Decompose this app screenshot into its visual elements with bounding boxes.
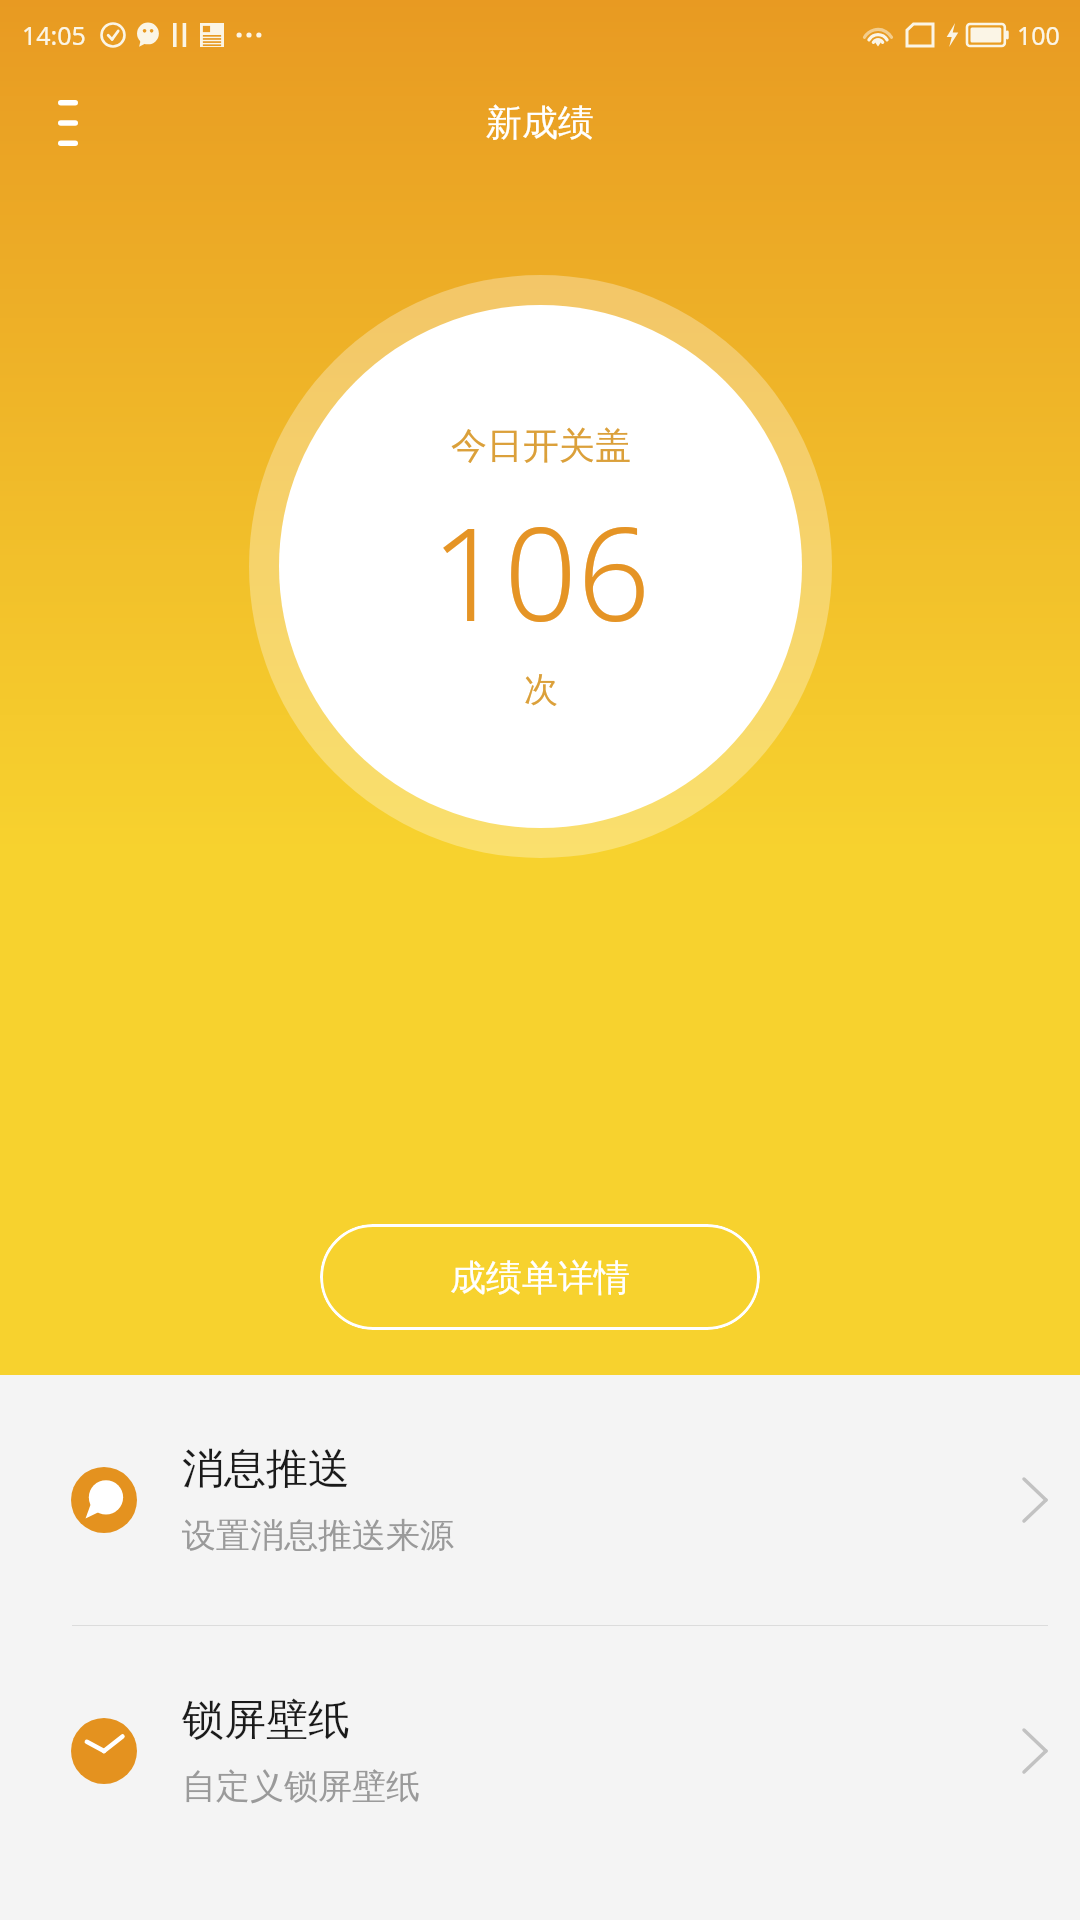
staticText: 锁屏壁纸 xyxy=(182,1694,350,1747)
staticText: 成绩单详情 xyxy=(450,1255,630,1300)
staticText: 今日开关盖 xyxy=(451,423,631,468)
staticText: 100 xyxy=(1017,18,1060,52)
staticText: 次 xyxy=(524,668,558,711)
button[interactable]: 成绩单详情 xyxy=(320,1224,760,1330)
button[interactable]: Menu xyxy=(36,91,100,155)
button[interactable]: 锁屏壁纸 xyxy=(0,1626,1080,1876)
button[interactable]: 消息推送 xyxy=(0,1375,1080,1625)
staticText: 106 xyxy=(431,484,651,658)
staticText: 设置消息推送来源 xyxy=(182,1514,454,1557)
staticText: 自定义锁屏壁纸 xyxy=(182,1765,420,1808)
staticText: 消息推送 xyxy=(182,1443,350,1496)
staticText: 新成绩 xyxy=(486,100,594,145)
staticText: 14:05 xyxy=(22,18,86,52)
